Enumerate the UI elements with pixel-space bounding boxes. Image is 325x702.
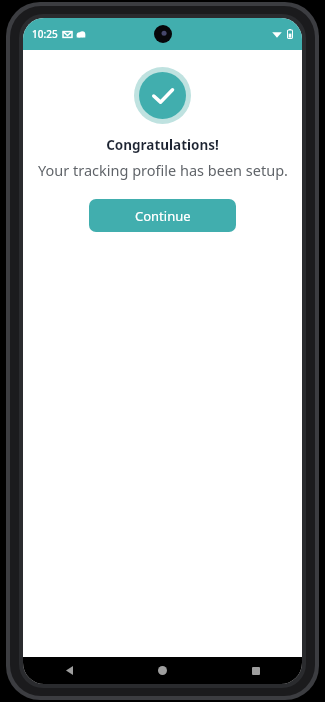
button[interactable]: Continue <box>89 199 236 232</box>
button[interactable]: Recent apps <box>209 657 302 684</box>
staticText: Continue <box>135 207 191 225</box>
staticText: Congratulations! <box>106 136 219 154</box>
button[interactable]: Home <box>116 657 209 684</box>
button[interactable]: Back <box>23 657 116 684</box>
staticText: Your tracking profile has been setup. <box>38 160 288 180</box>
staticText: 10:25 <box>32 27 58 41</box>
